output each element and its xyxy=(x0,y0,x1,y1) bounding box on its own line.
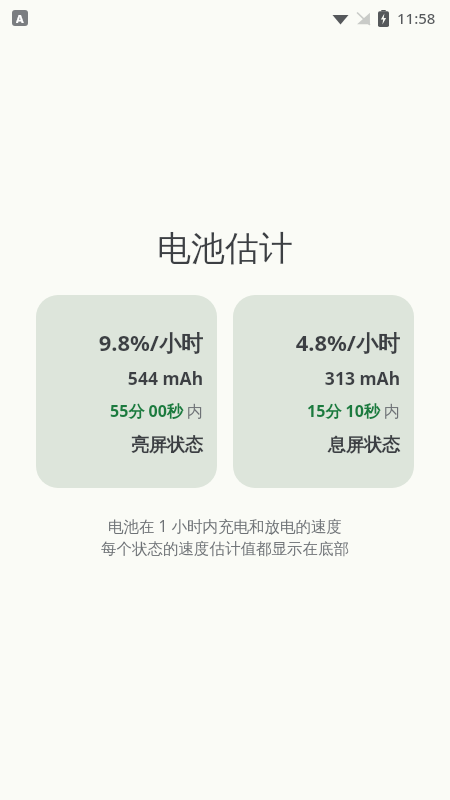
staticText: 每个状态的速度估计值都显示在底部 xyxy=(101,539,349,559)
staticText: 544 mAh xyxy=(127,366,203,390)
staticText: 电池估计 xyxy=(0,227,450,270)
button[interactable]: 9.8%/小时 xyxy=(36,295,217,488)
staticText: 电池在 1 小时内充电和放电的速度 xyxy=(108,515,342,536)
staticText: 15分 10秒 内 xyxy=(307,400,400,422)
staticText: A xyxy=(16,11,24,26)
staticText: 息屏状态 xyxy=(328,434,400,457)
staticText: 11:58 xyxy=(397,8,436,28)
staticText: 4.8%/小时 xyxy=(295,327,400,357)
staticText: 313 mAh xyxy=(324,366,400,390)
staticText: 9.8%/小时 xyxy=(98,327,203,357)
staticText: 55分 00秒 内 xyxy=(110,400,203,422)
button[interactable]: 4.8%/小时 xyxy=(233,295,414,488)
staticText: 亮屏状态 xyxy=(131,434,203,457)
